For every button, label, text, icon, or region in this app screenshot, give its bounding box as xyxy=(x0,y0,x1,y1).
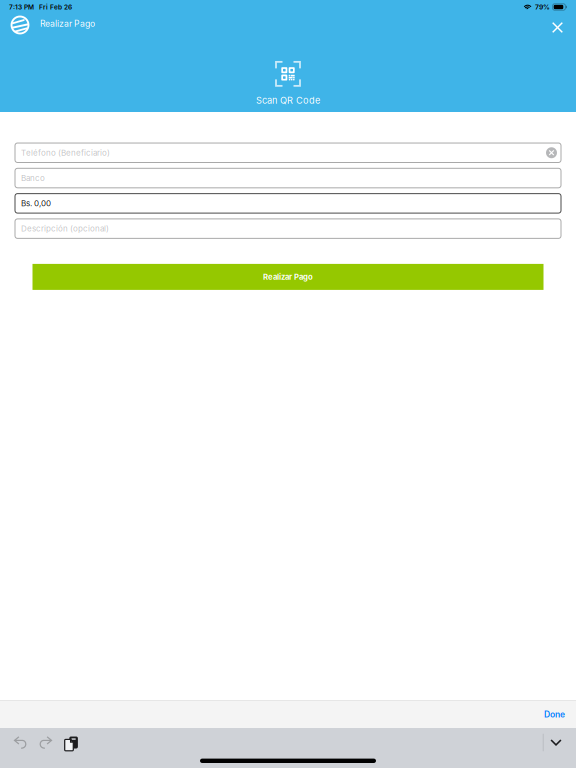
staticText: Done xyxy=(544,709,565,719)
staticText: Fri Feb 26 xyxy=(39,3,72,11)
staticText: Bs. 0,00 xyxy=(21,198,51,208)
staticText: Scan QR Code xyxy=(256,95,320,106)
button[interactable]: Close xyxy=(543,14,576,36)
button[interactable]: Paste xyxy=(57,728,81,756)
button[interactable]: Done xyxy=(533,701,576,728)
button[interactable]: Scan QR Code xyxy=(232,58,344,109)
staticText: Realizar Pago xyxy=(263,272,313,282)
button[interactable]: Realizar Pago xyxy=(0,14,105,36)
button[interactable]: Redo xyxy=(33,728,57,756)
button[interactable]: Undo xyxy=(9,728,33,756)
button[interactable]: Teléfono (Beneficiario) xyxy=(15,143,561,162)
button[interactable]: Hide keyboard xyxy=(544,728,568,756)
staticText: Descripción (opcional) xyxy=(21,224,109,233)
staticText: Banco xyxy=(21,173,45,183)
staticText: Teléfono (Beneficiario) xyxy=(21,148,110,158)
staticText: Realizar Pago xyxy=(40,18,95,29)
staticText: 79% xyxy=(535,3,550,11)
button[interactable]: Descripción (opcional) xyxy=(15,219,561,238)
button[interactable]: Bs. 0,00 xyxy=(15,194,561,213)
staticText: 7:13 PM xyxy=(9,3,34,11)
button[interactable]: Realizar Pago xyxy=(32,264,543,290)
button[interactable]: Banco xyxy=(15,168,561,188)
